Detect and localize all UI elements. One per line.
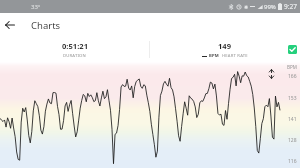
button[interactable]: Expand chart vertically	[265, 68, 277, 80]
staticText: DURATION	[63, 53, 86, 59]
staticText: ✸	[244, 4, 249, 10]
staticText: 99%	[264, 3, 276, 11]
staticText: HEART RATE	[222, 53, 248, 59]
staticText: 149	[218, 41, 232, 51]
staticText: 116	[288, 158, 297, 165]
staticText: Charts	[31, 19, 61, 32]
staticText: BPM	[287, 64, 297, 70]
staticText: 141	[288, 116, 297, 123]
staticText: 153	[288, 95, 297, 102]
staticText: 33°	[31, 3, 41, 11]
staticText: 166	[288, 73, 297, 80]
staticText: BPM	[209, 53, 219, 59]
button[interactable]: Back	[0, 13, 19, 37]
staticText: 128	[288, 137, 297, 144]
staticText: 0:51:21	[62, 41, 88, 51]
button[interactable]: Toggle heart rate series	[288, 45, 297, 54]
staticText: 9:27	[284, 2, 297, 11]
